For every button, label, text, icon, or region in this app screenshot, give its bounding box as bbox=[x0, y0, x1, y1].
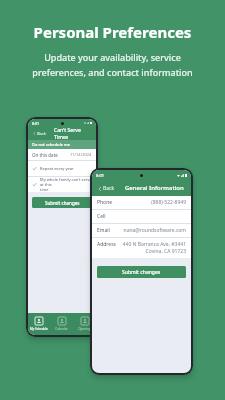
button[interactable]: Back bbox=[32, 129, 47, 138]
button[interactable]: Cell bbox=[92, 210, 191, 223]
staticText: Repeat every year bbox=[40, 166, 74, 171]
staticText: Submit changes bbox=[45, 200, 80, 206]
staticText: (888)-522-8949 bbox=[119, 199, 186, 206]
staticText: Do not schedule me bbox=[32, 142, 71, 147]
staticText: Cell bbox=[97, 213, 119, 220]
staticText: Back bbox=[37, 131, 46, 136]
staticText: 11/14/2024 bbox=[70, 152, 92, 157]
staticText: 440 N Barranca Ave, #3441 Covina, CA 917… bbox=[119, 241, 186, 255]
staticText: Can't Serve Times bbox=[54, 127, 92, 140]
button[interactable]: Back bbox=[97, 183, 116, 194]
staticText: My whole family can't serve at this time bbox=[40, 177, 92, 192]
staticText: Address bbox=[97, 241, 119, 248]
staticText: My Schedule bbox=[30, 327, 48, 331]
button[interactable]: Calendar bbox=[50, 313, 73, 335]
staticText: Openings bbox=[78, 327, 92, 331]
button[interactable]: Openings bbox=[73, 313, 96, 335]
staticText: Personal Preferences bbox=[12, 22, 213, 42]
button[interactable]: Address bbox=[92, 238, 191, 258]
staticText: Update your availability, service bbox=[12, 51, 213, 63]
button[interactable]: Submit changes bbox=[32, 197, 92, 208]
staticText: Phone bbox=[97, 199, 119, 206]
button[interactable]: My whole family can't serve at this time bbox=[28, 177, 96, 192]
button[interactable]: Email bbox=[92, 224, 191, 237]
staticText: Submit changes bbox=[122, 269, 161, 276]
staticText: Calendar bbox=[55, 327, 68, 331]
staticText: 8:01 bbox=[32, 121, 39, 126]
staticText: 8:01 bbox=[96, 173, 104, 178]
staticText: preferences, and contact information bbox=[12, 66, 213, 78]
staticText: General Information bbox=[125, 184, 184, 192]
button[interactable]: Submit changes bbox=[97, 266, 186, 278]
staticText: Back bbox=[103, 185, 115, 192]
button[interactable]: On this date bbox=[28, 149, 96, 160]
staticText: On this date bbox=[32, 152, 58, 158]
button[interactable]: Phone bbox=[92, 196, 191, 209]
staticText: nana@roundsoftware.com bbox=[119, 227, 186, 234]
button[interactable]: Repeat every year bbox=[28, 161, 96, 176]
staticText: Email bbox=[97, 227, 119, 234]
button[interactable]: My Schedule bbox=[28, 313, 50, 335]
